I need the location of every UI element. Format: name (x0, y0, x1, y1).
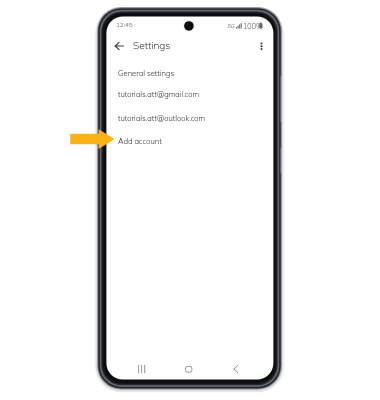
button[interactable]: Home (181, 358, 196, 380)
button[interactable]: Back (230, 358, 243, 380)
staticText: General settings (118, 68, 175, 78)
staticText: 100% (243, 22, 263, 31)
staticText: General settings (118, 68, 175, 78)
staticText: tutorials.att@outlook.com (118, 113, 206, 123)
staticText: 100% (243, 22, 263, 31)
button[interactable]: More options (255, 35, 268, 57)
button[interactable]: Navigate up (110, 35, 130, 57)
button[interactable]: tutorials.att@outlook.com (106, 107, 273, 129)
button[interactable]: Recent apps (133, 358, 150, 380)
button[interactable]: General settings (106, 62, 273, 84)
staticText: Settings (133, 39, 171, 52)
staticText: 5G (227, 22, 235, 29)
button[interactable]: tutorials.att@gmail.com (106, 83, 273, 105)
staticText: tutorials.att@gmail.com (118, 89, 200, 99)
button[interactable]: Add account callout (70, 129, 115, 149)
staticText: 5G (227, 22, 235, 29)
staticText: 12:45 (116, 21, 133, 29)
button[interactable]: Add account (106, 130, 273, 152)
staticText: tutorials.att@outlook.com (118, 113, 206, 123)
staticText: Add account (118, 136, 162, 146)
staticText: 12:45 (116, 21, 133, 29)
staticText: tutorials.att@gmail.com (118, 89, 200, 99)
staticText: Add account (118, 136, 162, 146)
staticText: Settings (133, 39, 171, 52)
